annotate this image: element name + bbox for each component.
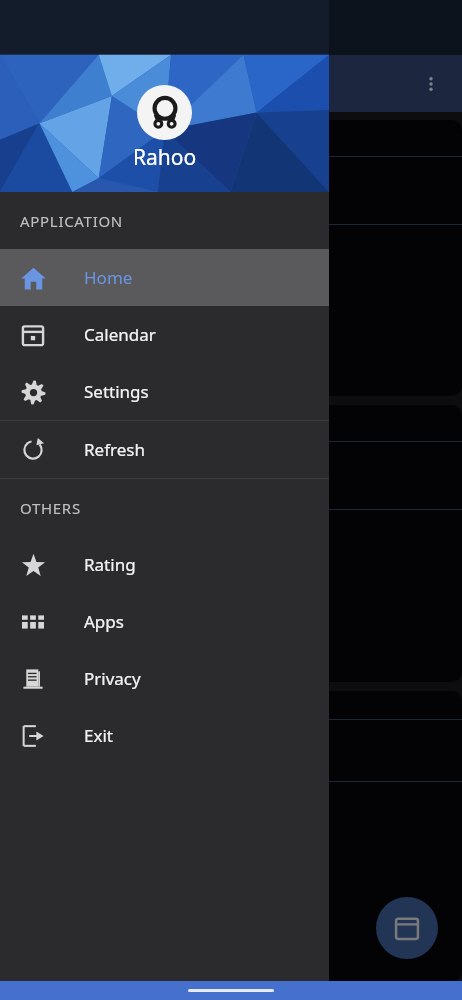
staticText: Rating: [84, 553, 136, 576]
button[interactable]: Refresh: [0, 421, 329, 478]
staticText: Settings: [84, 380, 149, 403]
staticText: APPLICATION: [20, 211, 123, 231]
button[interactable]: Add event: [376, 897, 438, 959]
button[interactable]: Settings: [0, 363, 329, 420]
button[interactable]: More options: [410, 63, 452, 105]
staticText: am: [13, 337, 35, 356]
staticText: pm: [13, 622, 35, 641]
staticText: OTHERS: [20, 498, 81, 518]
staticText: Calendar: [84, 323, 156, 346]
button[interactable]: Apps: [0, 593, 329, 650]
staticText: Privacy: [84, 667, 141, 690]
button[interactable]: Rating: [0, 536, 329, 593]
button[interactable]: Home: [0, 249, 329, 306]
staticText: Refresh: [84, 438, 145, 461]
button[interactable]: Exit: [0, 707, 329, 764]
staticText: Home: [84, 266, 133, 289]
button[interactable]: Privacy: [0, 650, 329, 707]
staticText: Rahoo: [133, 143, 197, 172]
button[interactable]: Calendar: [0, 306, 329, 363]
staticText: Exit: [84, 724, 113, 747]
button[interactable]: am: [0, 332, 48, 360]
staticText: Apps: [84, 610, 124, 633]
staticText: hu: [6, 165, 25, 185]
button[interactable]: pm: [0, 617, 48, 645]
